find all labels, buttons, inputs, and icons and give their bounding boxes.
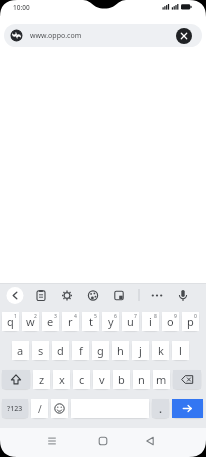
staticText: y (108, 314, 114, 329)
staticText: 5 (94, 313, 97, 320)
button[interactable]: p (182, 312, 199, 331)
staticText: 4 (74, 313, 77, 320)
button[interactable]: z (33, 370, 50, 389)
button[interactable] (168, 284, 198, 307)
button[interactable]: l (172, 341, 189, 360)
button[interactable]: d (52, 341, 69, 360)
button[interactable]: c (73, 370, 90, 389)
button[interactable] (40, 429, 64, 453)
button[interactable]: ?123 (2, 399, 28, 418)
button[interactable]: k (152, 341, 169, 360)
button[interactable] (172, 399, 203, 418)
staticText: r (68, 314, 73, 329)
staticText: k (158, 343, 164, 358)
staticText: l (179, 343, 182, 358)
button[interactable]: q (2, 312, 19, 331)
button[interactable] (173, 370, 201, 389)
staticText: 7 (134, 313, 137, 320)
button[interactable] (138, 429, 162, 453)
button[interactable] (28, 284, 54, 307)
staticText: 8 (154, 313, 157, 320)
staticText: m (156, 372, 167, 387)
staticText: s (38, 343, 44, 358)
staticText: 2 (34, 313, 37, 320)
staticText: i (149, 314, 152, 329)
button[interactable]: m (153, 370, 170, 389)
staticText: e (47, 314, 54, 329)
staticText: f (79, 343, 83, 358)
button[interactable]: v (93, 370, 110, 389)
button[interactable]: / (31, 399, 48, 418)
staticText: www.oppo.com (30, 31, 82, 41)
button[interactable]: i (142, 312, 159, 331)
button[interactable]: u (122, 312, 139, 331)
staticText: g (97, 343, 104, 358)
staticText: a (17, 343, 24, 358)
button[interactable] (146, 284, 168, 307)
staticText: q (7, 314, 14, 329)
button[interactable] (51, 399, 68, 418)
staticText: 3 (54, 313, 57, 320)
staticText: 1 (14, 313, 17, 320)
button[interactable] (2, 284, 28, 307)
button[interactable]: y (102, 312, 119, 331)
button[interactable]: s (32, 341, 49, 360)
button[interactable] (176, 28, 192, 44)
staticText: o (167, 314, 174, 329)
staticText: c (79, 372, 85, 387)
staticText: h (117, 343, 124, 358)
button[interactable]: w (22, 312, 39, 331)
button[interactable]: b (113, 370, 130, 389)
staticText: 9 (174, 313, 177, 320)
button[interactable]: . (152, 399, 169, 418)
button[interactable]: f (72, 341, 89, 360)
staticText: 10:00 (13, 3, 30, 12)
staticText: j (139, 343, 142, 358)
staticText: w (26, 314, 35, 329)
button[interactable]: e (42, 312, 59, 331)
staticText: 0 (194, 313, 197, 320)
button[interactable]: r (62, 312, 79, 331)
button[interactable]: h (112, 341, 129, 360)
staticText: d (57, 343, 64, 358)
staticText: v (99, 372, 105, 387)
staticText: 6 (114, 313, 117, 320)
button[interactable]: o (162, 312, 179, 331)
staticText: / (38, 402, 42, 416)
button[interactable] (106, 284, 132, 307)
button[interactable] (2, 370, 30, 389)
button[interactable] (91, 429, 115, 453)
staticText: z (39, 372, 45, 387)
staticText: t (89, 314, 93, 329)
staticText: p (187, 314, 194, 329)
button[interactable]: t (82, 312, 99, 331)
button[interactable]: www.oppo.com (4, 24, 202, 47)
button[interactable]: g (92, 341, 109, 360)
button[interactable] (54, 284, 80, 307)
staticText: x (59, 372, 65, 387)
staticText: n (138, 372, 145, 387)
staticText: . (159, 401, 163, 416)
staticText: ?123 (7, 404, 23, 414)
button[interactable]: x (53, 370, 70, 389)
button[interactable]: j (132, 341, 149, 360)
button[interactable]: a (12, 341, 29, 360)
button[interactable]: n (133, 370, 150, 389)
button[interactable] (80, 284, 106, 307)
staticText: u (127, 314, 134, 329)
staticText: b (118, 372, 125, 387)
